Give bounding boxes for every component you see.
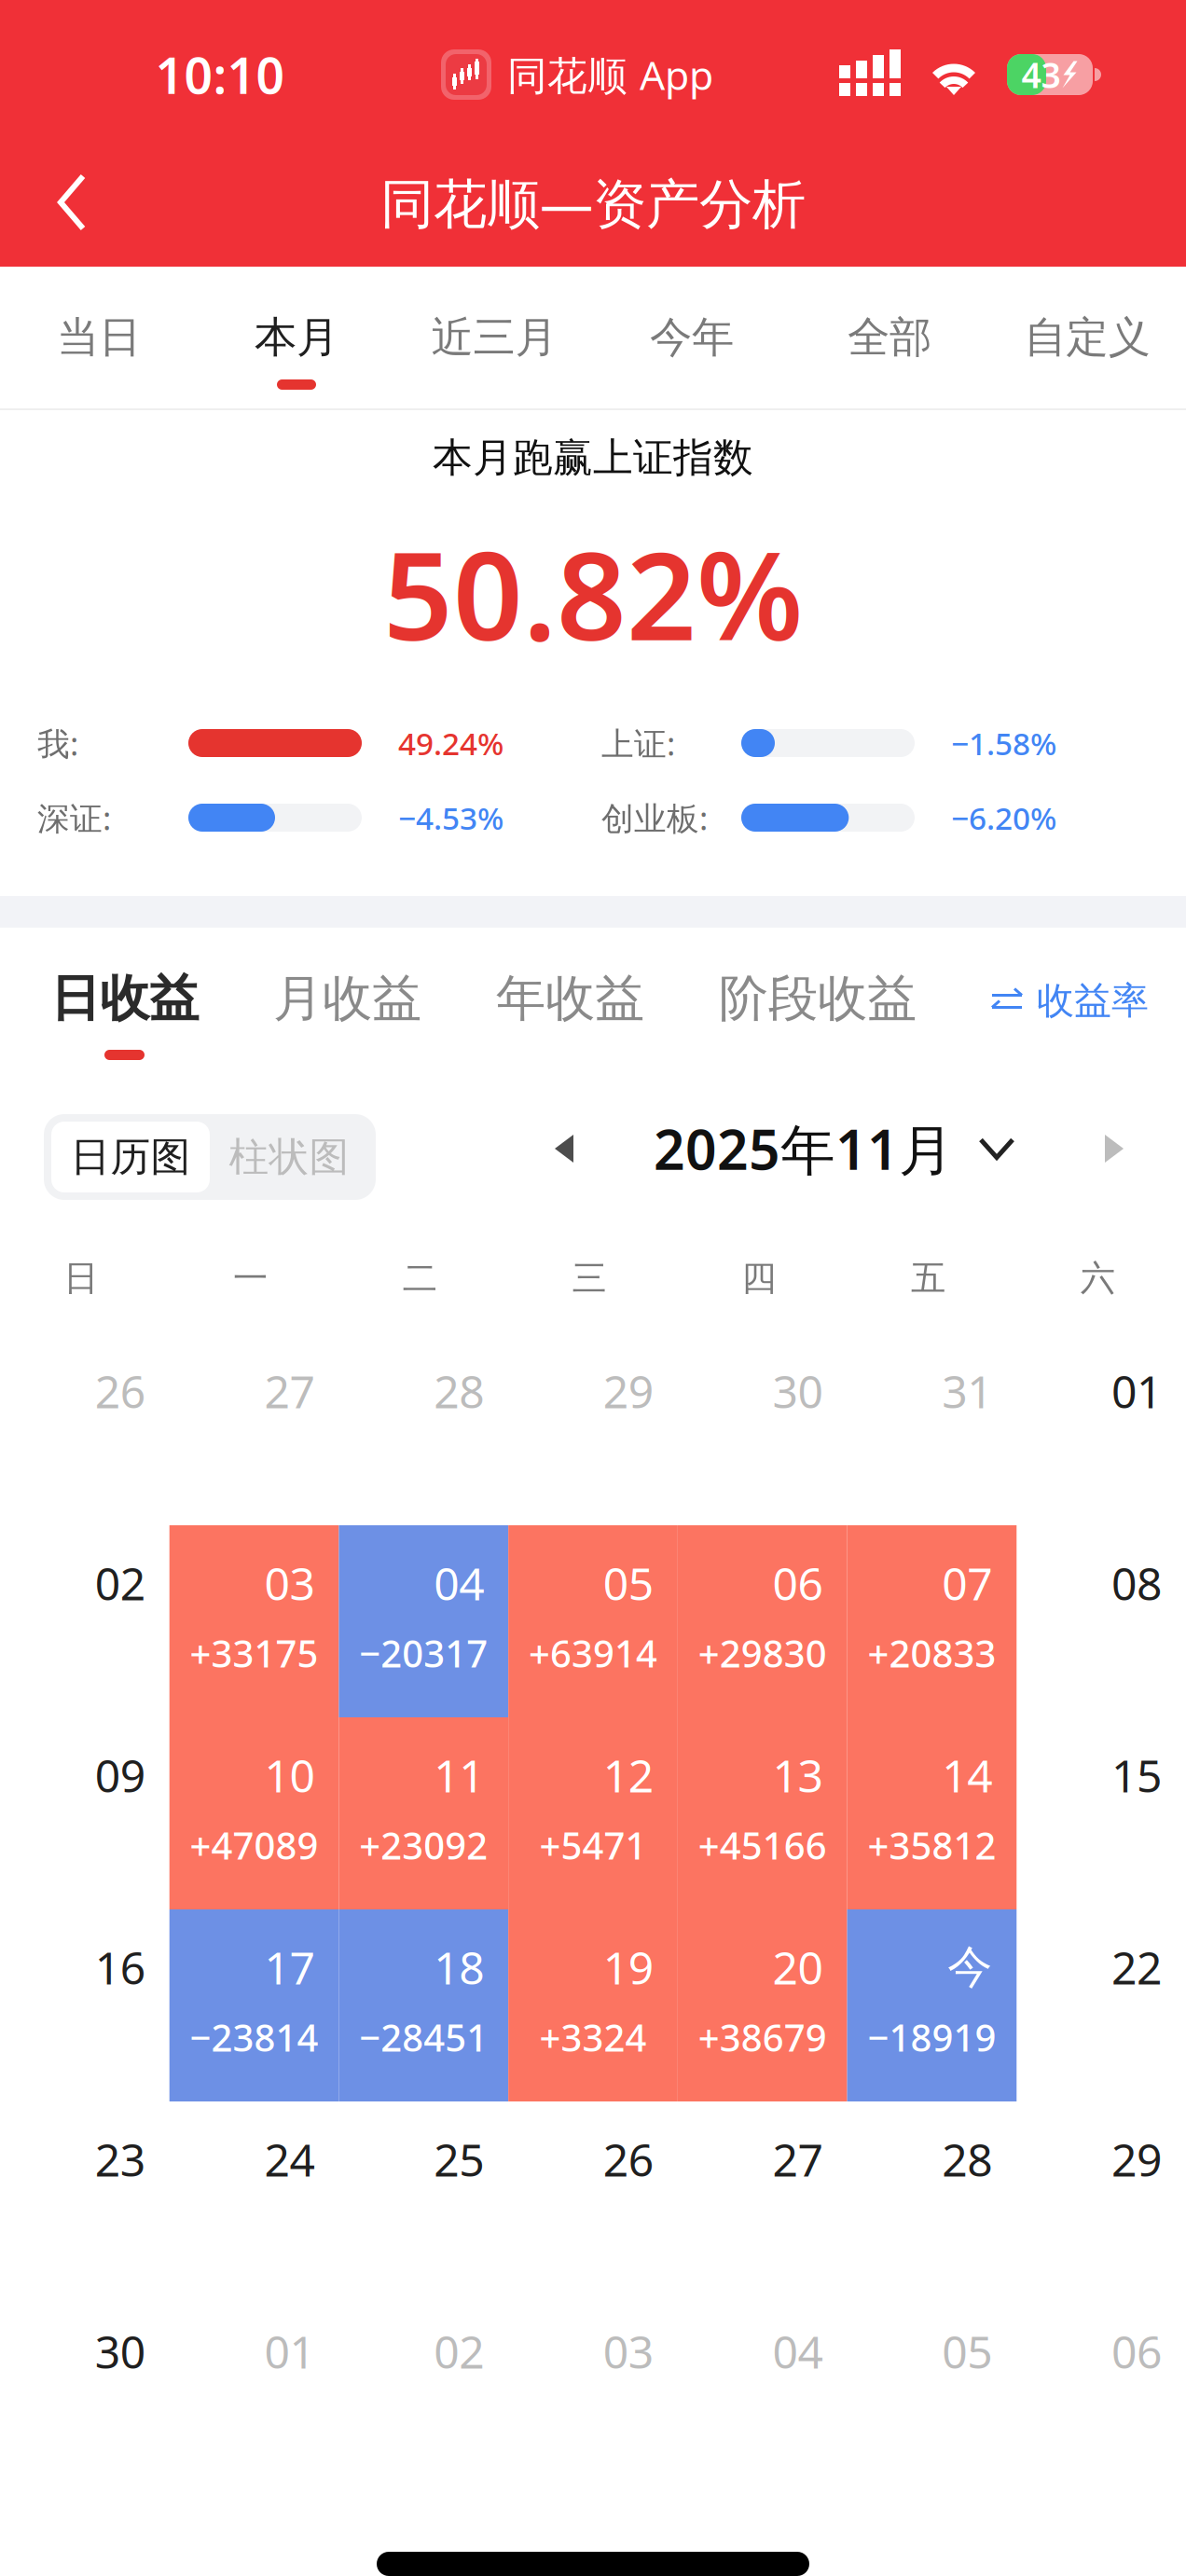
button[interactable]: 收益率 (992, 928, 1186, 1074)
staticText: −23814 (190, 2012, 319, 2062)
button[interactable]: 25 (339, 2101, 508, 2294)
button[interactable]: 本月 (198, 267, 395, 408)
button[interactable]: 11 (339, 1717, 508, 1909)
button[interactable]: 全部 (791, 267, 988, 408)
staticText: 收益率 (1037, 978, 1149, 1024)
button[interactable]: 03 (169, 1525, 339, 1717)
staticText: 今 (948, 1940, 992, 1995)
button[interactable]: 26 (0, 1333, 169, 1525)
staticText: 18 (434, 1937, 484, 1997)
button[interactable]: 08 (1017, 1525, 1186, 1717)
button[interactable]: 年收益 (459, 928, 682, 1074)
button[interactable]: 下一月 (1105, 1135, 1124, 1163)
button[interactable]: 01 (169, 2294, 339, 2486)
staticText: 49.24% (398, 722, 503, 764)
staticText: 同花顺 App (507, 48, 713, 101)
button[interactable]: 日历图 (51, 1122, 210, 1192)
staticText: 12 (603, 1745, 654, 1805)
button[interactable]: 20 (678, 1909, 847, 2101)
button[interactable]: 今 (847, 1909, 1017, 2101)
staticText: +3324 (539, 2012, 647, 2062)
button[interactable]: 30 (0, 2294, 169, 2486)
staticText: 04 (773, 2322, 823, 2381)
button[interactable]: 03 (508, 2294, 678, 2486)
button[interactable]: 29 (1017, 2101, 1186, 2294)
button[interactable]: 27 (678, 2101, 847, 2294)
staticText: +23092 (359, 1820, 488, 1870)
button[interactable]: 13 (678, 1717, 847, 1909)
staticText: 08 (1111, 1553, 1162, 1613)
button[interactable]: 01 (1017, 1333, 1186, 1525)
button[interactable]: 17 (169, 1909, 339, 2101)
button[interactable]: 22 (1017, 1909, 1186, 2101)
staticText: 01 (1111, 1361, 1162, 1421)
button[interactable]: 27 (169, 1333, 339, 1525)
staticText: 柱状图 (229, 1133, 349, 1181)
button[interactable]: 当日 (0, 267, 198, 408)
staticText: 日收益 (50, 968, 199, 1029)
staticText: 当日 (57, 312, 141, 364)
staticText: 一 (233, 1257, 268, 1300)
staticText: 今年 (650, 312, 734, 364)
button[interactable]: 上一月 (555, 1135, 573, 1163)
staticText: −4.53% (398, 797, 503, 838)
button[interactable]: 10 (169, 1717, 339, 1909)
button[interactable]: 05 (847, 2294, 1017, 2486)
staticText: −20317 (359, 1628, 488, 1678)
button[interactable]: 09 (0, 1717, 169, 1909)
button[interactable]: 24 (169, 2101, 339, 2294)
button[interactable]: 月收益 (236, 928, 459, 1074)
staticText: 年收益 (496, 968, 644, 1029)
button[interactable]: 06 (678, 1525, 847, 1717)
button[interactable]: 19 (508, 1909, 678, 2101)
button[interactable]: 02 (339, 2294, 508, 2486)
staticText: 自定义 (1024, 312, 1150, 364)
button[interactable]: 04 (339, 1525, 508, 1717)
button[interactable]: 05 (508, 1525, 678, 1717)
button[interactable]: 29 (508, 1333, 678, 1525)
button[interactable]: 阶段收益 (682, 928, 954, 1074)
staticText: 29 (603, 1361, 654, 1421)
staticText: 15 (1111, 1745, 1162, 1805)
staticText: 四 (741, 1257, 776, 1300)
button[interactable]: 18 (339, 1909, 508, 2101)
staticText: 29 (1111, 2130, 1162, 2189)
button[interactable]: 15 (1017, 1717, 1186, 1909)
button[interactable]: 02 (0, 1525, 169, 1717)
button[interactable]: 07 (847, 1525, 1017, 1717)
button[interactable]: 30 (678, 1333, 847, 1525)
staticText: 本月 (255, 312, 338, 364)
staticText: 创业板: (601, 796, 708, 839)
button[interactable]: 今年 (593, 267, 791, 408)
staticText: 我: (37, 722, 78, 765)
button[interactable]: 自定义 (988, 267, 1186, 408)
staticText: 25 (434, 2130, 484, 2189)
button[interactable]: 06 (1017, 2294, 1186, 2486)
button[interactable]: 14 (847, 1717, 1017, 1909)
button[interactable]: 16 (0, 1909, 169, 2101)
staticText: 02 (95, 1553, 145, 1613)
staticText: 20 (773, 1937, 823, 1997)
button[interactable]: 12 (508, 1717, 678, 1909)
button[interactable]: 31 (847, 1333, 1017, 1525)
staticText: 本月跑赢上证指数 (433, 433, 753, 482)
staticText: 17 (264, 1937, 315, 1997)
button[interactable]: 2025年11月 (654, 1111, 1015, 1186)
staticText: 01 (264, 2322, 315, 2381)
button[interactable]: 柱状图 (210, 1122, 368, 1192)
staticText: 31 (942, 1361, 992, 1421)
button[interactable]: 28 (339, 1333, 508, 1525)
button[interactable]: 26 (508, 2101, 678, 2294)
button[interactable]: 返回 (0, 143, 144, 262)
staticText: 10 (264, 1745, 315, 1805)
button[interactable]: 28 (847, 2101, 1017, 2294)
staticText: 03 (264, 1553, 315, 1613)
staticText: −6.20% (951, 797, 1056, 838)
button[interactable]: 23 (0, 2101, 169, 2294)
staticText: 二 (403, 1257, 437, 1300)
staticText: +63914 (529, 1628, 657, 1678)
staticText: +35812 (867, 1820, 996, 1870)
button[interactable]: 日收益 (13, 928, 236, 1074)
button[interactable]: 04 (678, 2294, 847, 2486)
button[interactable]: 近三月 (395, 267, 593, 408)
